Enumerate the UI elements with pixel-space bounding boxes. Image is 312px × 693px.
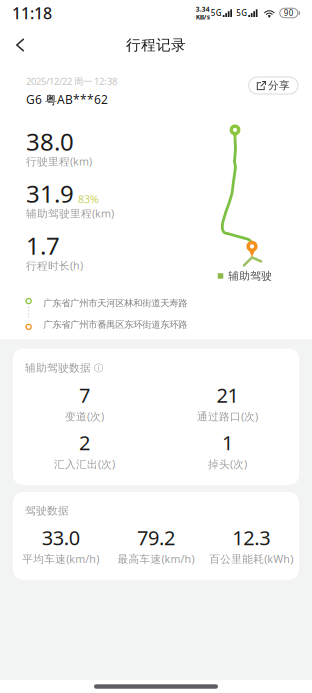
staticText: 广东省广州市天河区林和街道天寿路 [43,297,187,309]
staticText: 平均车速(km/h) [22,552,99,566]
staticText: 79.2 [137,524,175,551]
staticText: 变道(次) [65,409,104,423]
staticText: 7 [79,382,90,408]
staticText: 11:18 [12,2,52,24]
staticText: G6 粤AB***62 [26,91,108,107]
staticText: 通过路口(次) [197,409,258,423]
staticText: 12.3 [232,524,270,551]
staticText: ⓘ [94,362,103,374]
staticText: 5G [211,8,222,18]
staticText: 辅助驾驶数据 [25,361,91,375]
staticText: 2025/12/22 周一 12:38 [26,75,117,87]
staticText: 广东省广州市番禺区东环街道东环路 [43,319,187,330]
staticText: 1 [222,429,233,456]
staticText: 汇入汇出(次) [54,457,115,471]
staticText: 90 [284,8,294,18]
staticText: 38.0 [26,125,74,157]
staticText: KB/s [196,12,210,21]
staticText: 33.0 [42,524,80,551]
staticText: 21 [216,382,238,408]
staticText: 3.34 [196,5,210,13]
staticText: 分享 [268,79,290,92]
staticText: 辅助驾驶里程(km) [26,206,114,220]
staticText: 1.7 [26,229,60,261]
staticText: 最高车速(km/h) [117,552,194,566]
staticText: 辅助驾驶 [228,269,272,282]
button[interactable]: 返回 [0,32,40,58]
staticText: 驾驶数据 [25,504,69,517]
button[interactable]: 分享 [249,77,298,94]
staticText: 行驶里程(km) [26,154,92,168]
staticText: 31.9 [26,177,74,209]
staticText: 83% [78,192,99,206]
staticText: 行程时长(h) [26,258,83,272]
staticText: 5G [236,8,247,18]
staticText: 2 [79,429,90,456]
staticText: 掉头(次) [208,457,247,471]
staticText: 行程记录 [126,36,186,54]
staticText: 百公里能耗(kWh) [209,552,293,566]
